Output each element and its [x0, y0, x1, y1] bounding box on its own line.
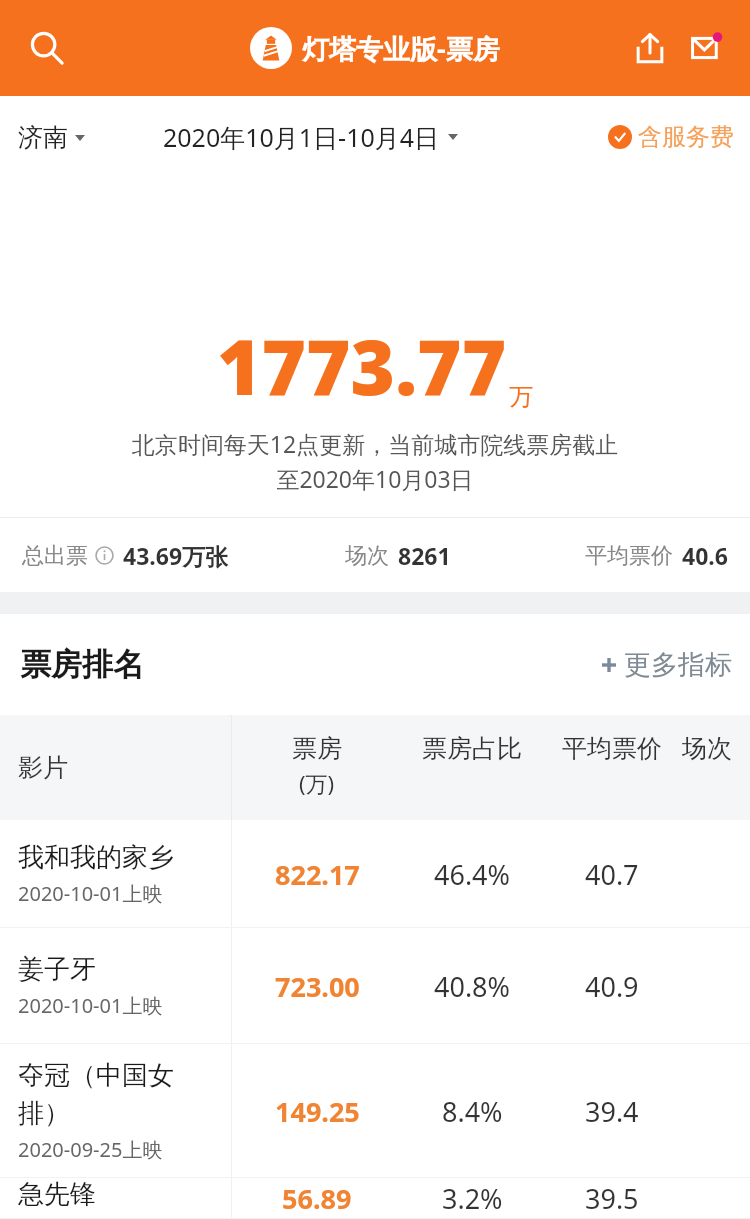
staticText: 2020-09-30上映	[18, 1217, 163, 1219]
staticText: 平均票价	[562, 733, 662, 764]
staticText: 8261	[398, 540, 451, 571]
staticText: 3.2%	[442, 1180, 503, 1217]
staticText: 含服务费	[638, 122, 734, 152]
staticText: 票房占比	[422, 733, 522, 764]
staticText: 39.4	[585, 1093, 639, 1130]
staticText: (万)	[299, 768, 335, 798]
staticText: 夺冠（中国女排）	[18, 1059, 223, 1130]
staticText: 723.00	[275, 968, 360, 1005]
staticText: 2020年10月1日-10月4日	[163, 120, 440, 154]
staticText: 56.89	[282, 1180, 352, 1217]
staticText: 北京时间每天12点更新，当前城市院线票房截止 至2020年10月03日	[40, 428, 710, 495]
staticText: 40.6	[682, 540, 728, 571]
staticText: 822.17	[275, 856, 360, 893]
staticText: 43.69万张	[123, 540, 229, 571]
staticText: 平均票价	[585, 542, 673, 570]
staticText: 总出票	[22, 542, 88, 570]
staticText: 影片	[18, 752, 68, 783]
button[interactable]: 更多指标	[600, 648, 732, 682]
staticText: 40.8%	[434, 968, 511, 1005]
staticText: 灯塔专业版-票房	[302, 30, 500, 67]
staticText: 8.4%	[442, 1093, 503, 1130]
button[interactable]: 含服务费	[608, 122, 734, 152]
button[interactable]: 济南	[18, 122, 85, 153]
staticText: 票房	[292, 733, 342, 764]
staticText: 40.7	[585, 856, 639, 893]
staticText: 票房排名	[20, 645, 144, 684]
button[interactable]: 急先锋	[0, 1178, 750, 1219]
staticText: 46.4%	[434, 856, 511, 893]
button[interactable]: Share	[622, 20, 678, 76]
staticText: 2020-10-01上映	[18, 992, 163, 1019]
staticText: 40.9	[585, 968, 639, 1005]
staticText: 39.5	[585, 1180, 639, 1217]
button[interactable]: Messages	[678, 20, 734, 76]
staticText: 姜子牙	[18, 953, 96, 986]
staticText: 2020-10-01上映	[18, 880, 163, 907]
staticText: 急先锋	[18, 1178, 96, 1211]
staticText: 济南	[18, 122, 68, 153]
staticText: 场次	[682, 733, 732, 764]
button[interactable]: 我和我的家乡	[0, 820, 750, 928]
button[interactable]: 2020年10月1日-10月4日	[163, 120, 458, 154]
staticText: 更多指标	[624, 648, 732, 682]
staticText: 我和我的家乡	[18, 841, 174, 874]
staticText: 场次	[345, 542, 389, 570]
button[interactable]: Search	[18, 20, 74, 76]
button[interactable]: 姜子牙	[0, 928, 750, 1044]
staticText: 149.25	[275, 1093, 360, 1130]
staticText: 1773.77	[217, 314, 507, 418]
button[interactable]: 夺冠（中国女排）	[0, 1044, 750, 1178]
staticText: 2020-09-25上映	[18, 1136, 163, 1163]
staticText: 万	[509, 382, 533, 412]
